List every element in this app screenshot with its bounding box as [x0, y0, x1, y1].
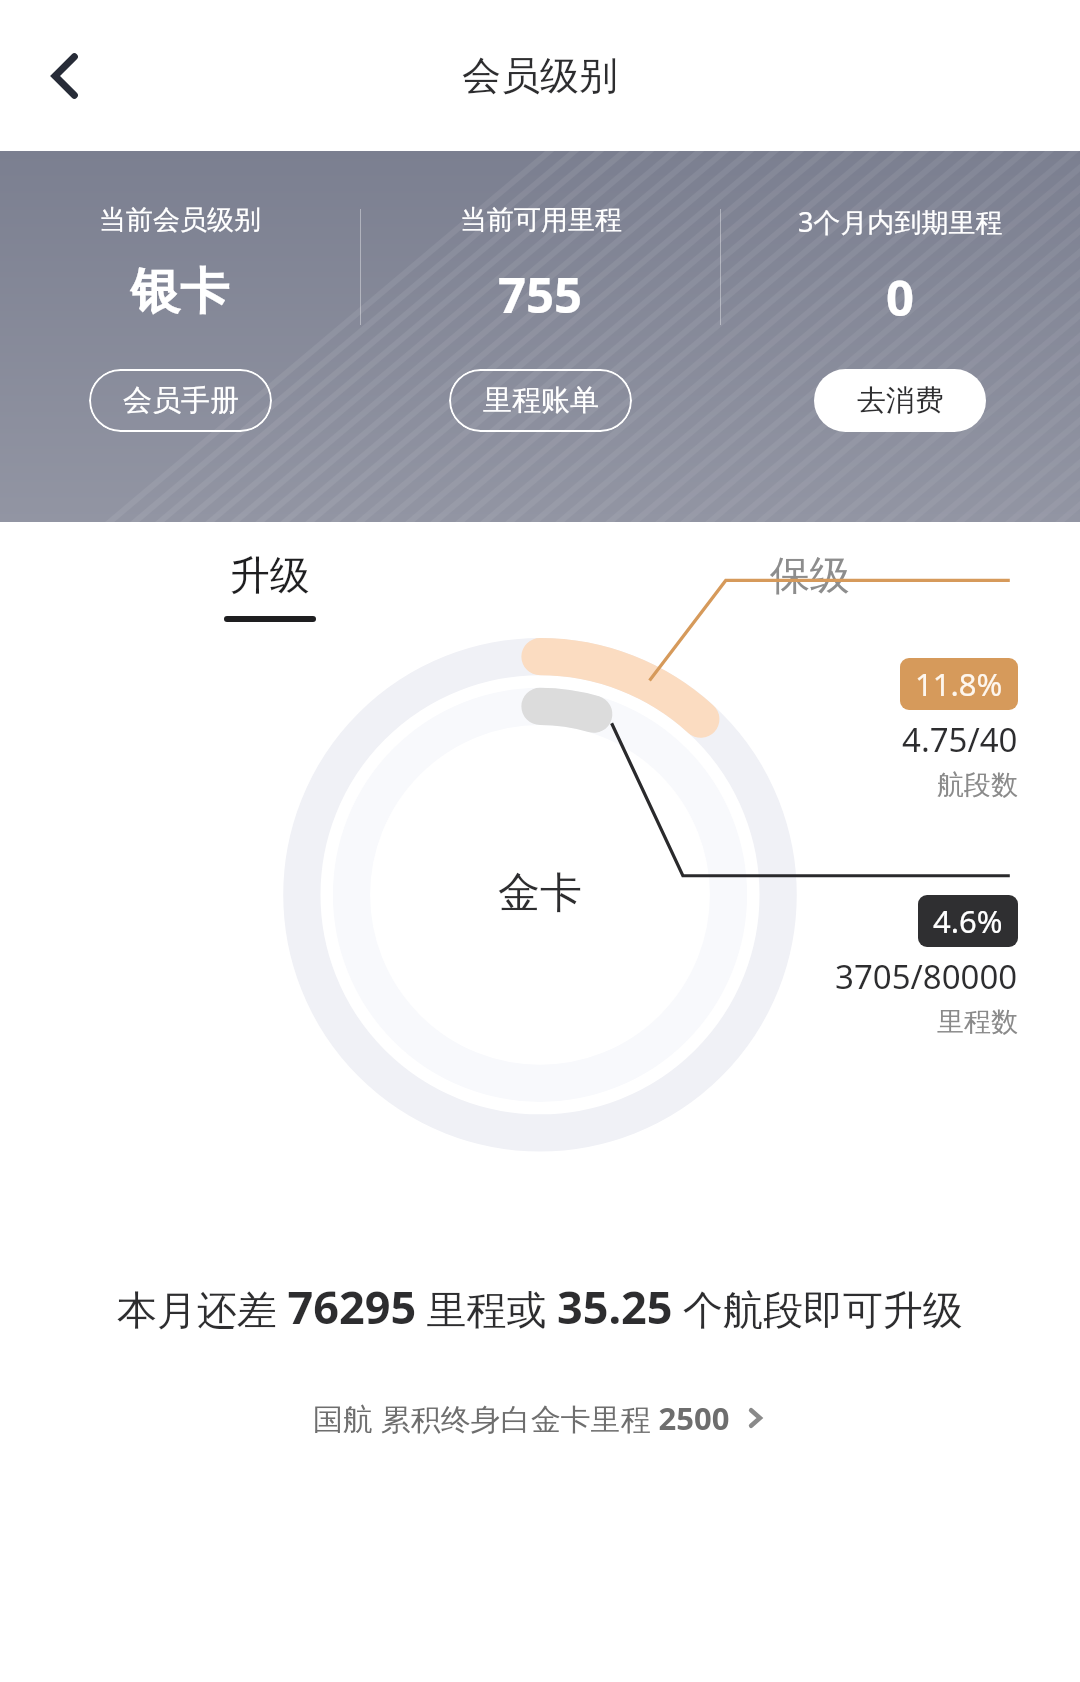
staticText: 本月还差 76295 里程或 35.25 个航段即可升级 [56, 1276, 1024, 1337]
staticText: 4.75/40 [902, 717, 1018, 762]
staticText: 升级 [230, 550, 310, 600]
button[interactable]: 里程账单 [449, 369, 632, 432]
staticText: 当前会员级别 [99, 203, 261, 237]
staticText: 会员手册 [123, 382, 239, 419]
button[interactable]: 升级 [0, 522, 540, 650]
staticText: 航段数 [937, 768, 1018, 802]
staticText: 金卡 [498, 867, 582, 920]
staticText: 755 [498, 261, 583, 328]
staticText: 会员级别 [462, 51, 618, 100]
button[interactable]: 会员手册 [89, 369, 272, 432]
button[interactable]: 国航 累积终身白金卡里程 2500 [301, 1389, 780, 1447]
staticText: 银卡 [131, 261, 229, 323]
button[interactable]: 去消费 [814, 369, 986, 432]
staticText: 3个月内到期里程 [798, 203, 1003, 240]
staticText: 4.6% [933, 900, 1003, 942]
button[interactable]: 保级 [540, 522, 1080, 650]
staticText: 11.8% [915, 663, 1003, 705]
staticText: 3705/80000 [835, 954, 1018, 999]
staticText: 里程账单 [483, 382, 599, 419]
staticText: 保级 [770, 550, 850, 600]
button[interactable]: Back [30, 39, 104, 113]
staticText: 国航 累积终身白金卡里程 2500 [313, 1397, 730, 1439]
staticText: 里程数 [937, 1005, 1018, 1039]
staticText: 去消费 [857, 382, 944, 419]
staticText: 0 [886, 264, 915, 331]
staticText: 当前可用里程 [460, 203, 622, 237]
